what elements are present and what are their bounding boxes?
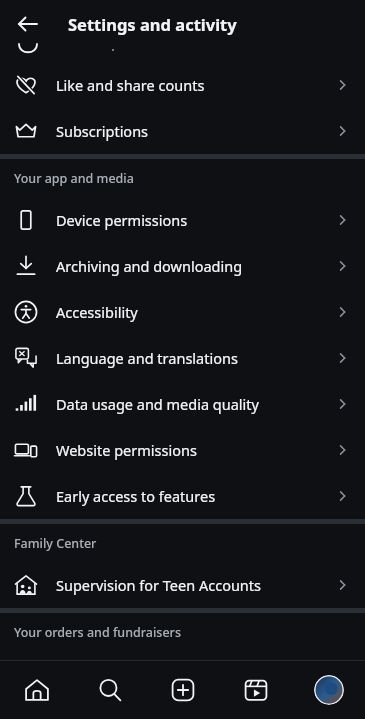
button[interactable]: Profile xyxy=(314,675,344,705)
staticText: Accessibility xyxy=(56,302,333,322)
button[interactable]: Search xyxy=(73,661,146,719)
staticText: Supervision for Teen Accounts xyxy=(56,575,333,595)
button[interactable]: Device permissions xyxy=(0,197,365,243)
staticText: Family Center xyxy=(14,535,97,552)
button[interactable]: Language and translations xyxy=(0,335,365,381)
button[interactable]: Subscriptions xyxy=(0,108,365,154)
button[interactable]: Back xyxy=(8,4,48,44)
staticText: Website permissions xyxy=(56,440,333,460)
button[interactable]: Create xyxy=(146,661,219,719)
button[interactable]: Like and share counts xyxy=(0,62,365,108)
button[interactable]: Website permissions xyxy=(0,427,365,473)
staticText: Data usage and media quality xyxy=(56,394,333,414)
staticText: Archiving and downloading xyxy=(56,256,333,276)
button[interactable]: Home xyxy=(0,661,73,719)
staticText: Device permissions xyxy=(56,210,333,230)
staticText: Your orders and fundraisers xyxy=(14,624,181,641)
button[interactable]: Archiving and downloading xyxy=(0,243,365,289)
button[interactable]: Accessibility xyxy=(0,289,365,335)
staticText: Early access to features xyxy=(56,486,333,506)
staticText: Your app and media xyxy=(14,170,134,187)
staticText: Settings and activity xyxy=(68,13,237,35)
staticText: Language and translations xyxy=(56,348,333,368)
button[interactable] xyxy=(0,48,365,62)
staticText: Subscriptions xyxy=(56,121,333,141)
button[interactable]: Data usage and media quality xyxy=(0,381,365,427)
button[interactable]: Early access to features xyxy=(0,473,365,519)
staticText: Like and share counts xyxy=(56,75,333,95)
button[interactable]: Reels xyxy=(219,661,292,719)
button[interactable]: Supervision for Teen Accounts xyxy=(0,562,365,608)
